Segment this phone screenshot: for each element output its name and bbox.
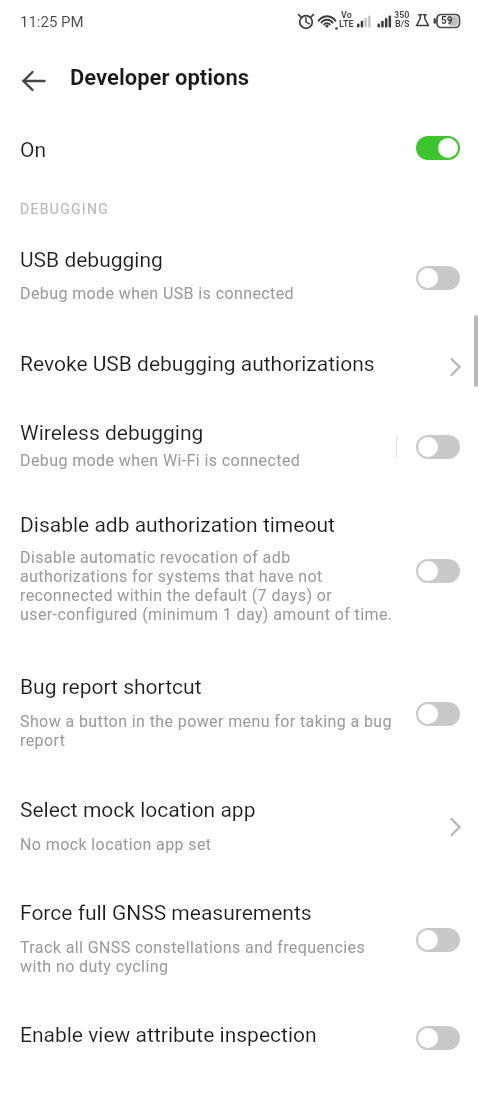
button[interactable] [416, 559, 460, 583]
button[interactable] [416, 136, 460, 160]
staticText: Force full GNSS measurements [20, 901, 312, 926]
staticText: Developer options [70, 65, 250, 91]
staticText: Disable automatic revocation of adb auth… [20, 548, 393, 624]
button[interactable]: Force full GNSS measurements [0, 888, 480, 994]
button[interactable] [416, 702, 460, 726]
button[interactable] [22, 69, 46, 93]
staticText: Select mock location app [20, 798, 256, 823]
staticText: 11:25 PM [20, 13, 84, 31]
button[interactable]: Bug report shortcut [0, 660, 480, 766]
staticText: Bug report shortcut [20, 675, 202, 700]
button[interactable]: On [0, 118, 480, 178]
button[interactable]: Disable adb authorization timeout [0, 498, 480, 640]
staticText: Disable adb authorization timeout [20, 513, 335, 538]
button[interactable]: USB debugging [0, 240, 480, 316]
staticText: 59 [441, 15, 453, 27]
staticText: Wireless debugging [20, 421, 204, 446]
staticText: Show a button in the power menu for taki… [20, 712, 392, 750]
staticText: Vo [341, 10, 352, 21]
button[interactable]: Revoke USB debugging authorizations [0, 338, 480, 396]
button[interactable]: Enable view attribute inspection [0, 1012, 480, 1082]
button[interactable] [416, 266, 460, 290]
button[interactable] [416, 928, 460, 952]
button[interactable]: Select mock location app [0, 786, 480, 870]
staticText: Revoke USB debugging authorizations [20, 352, 375, 377]
button[interactable] [416, 1026, 460, 1050]
staticText: Debug mode when USB is connected [20, 284, 295, 303]
staticText: Enable view attribute inspection [20, 1023, 317, 1048]
staticText: DEBUGGING [20, 201, 110, 217]
staticText: Track all GNSS constellations and freque… [20, 938, 366, 976]
staticText: LTE [339, 19, 354, 30]
staticText: No mock location app set [20, 835, 212, 854]
staticText: On [20, 138, 47, 163]
button[interactable] [416, 435, 460, 459]
staticText: B/S [395, 19, 410, 30]
button[interactable]: Wireless debugging [0, 410, 480, 484]
staticText: 350 [394, 10, 410, 21]
staticText: Debug mode when Wi-Fi is connected [20, 451, 301, 470]
staticText: USB debugging [20, 248, 163, 273]
